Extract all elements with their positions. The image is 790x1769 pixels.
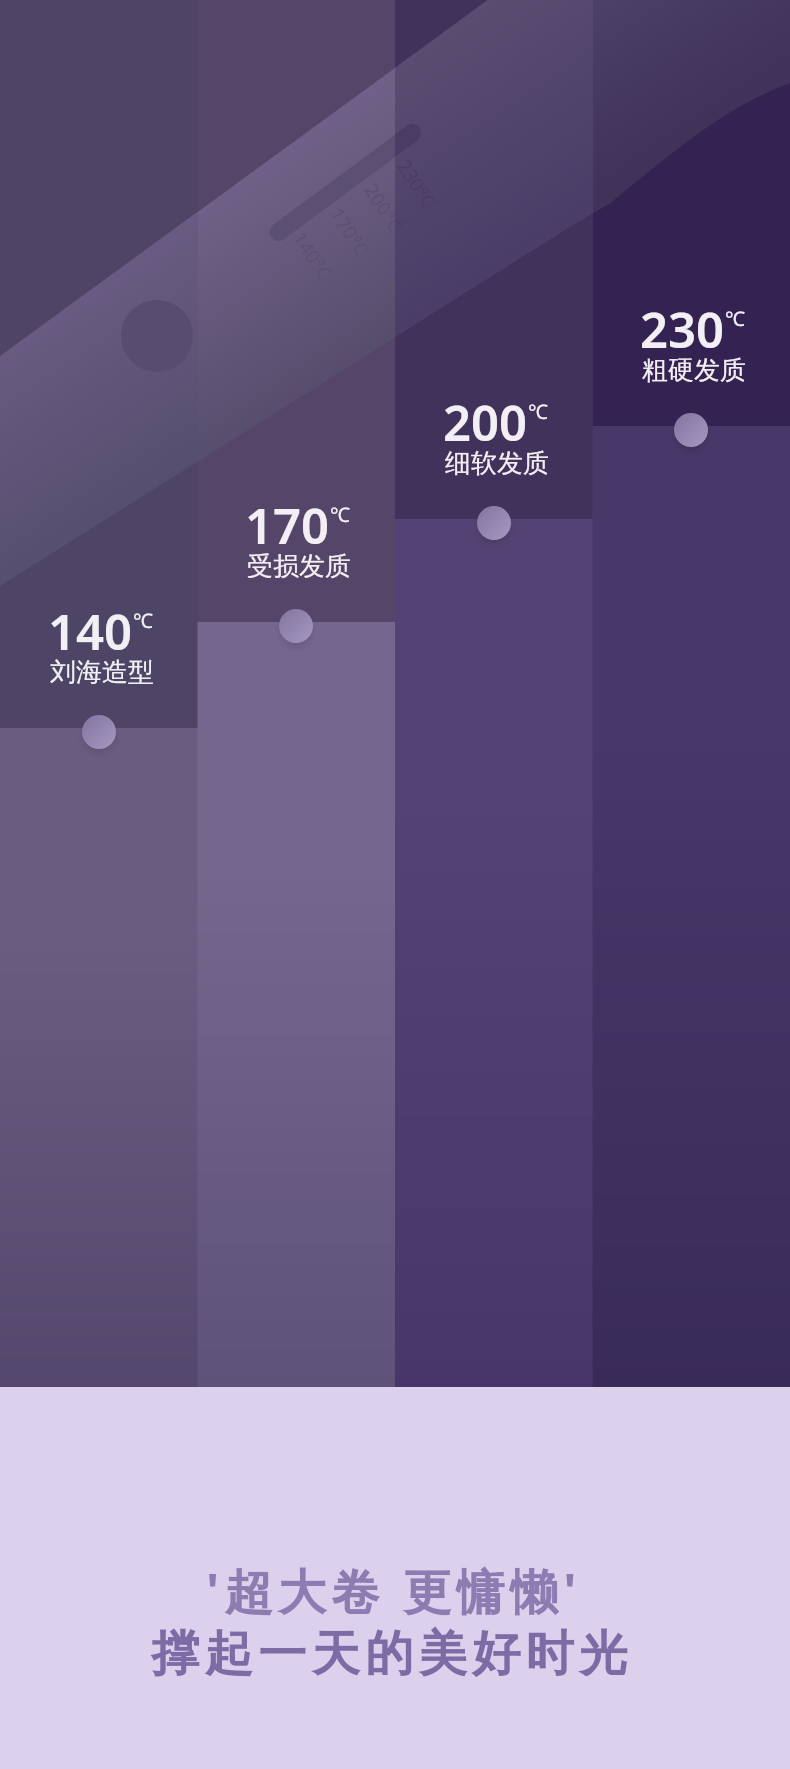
staticText: 140	[48, 598, 133, 654]
staticText: 刘海造型	[2, 656, 202, 689]
button[interactable]: 230 degrees setting	[665, 404, 717, 456]
staticText: '超大卷 更慵懒'	[0, 1558, 789, 1624]
button[interactable]: 200 degrees setting	[468, 497, 520, 549]
button[interactable]: 140	[0, 607, 199, 663]
staticText: 撑起一天的美好时光	[0, 1624, 787, 1684]
button[interactable]: 170 degrees setting	[270, 600, 322, 652]
staticText: ℃	[528, 398, 548, 425]
staticText: 230°C	[392, 155, 396, 213]
button[interactable]: 140 degrees setting	[73, 706, 125, 758]
staticText: 200°C	[358, 179, 396, 237]
button[interactable]: 230	[591, 305, 790, 361]
staticText: 170	[245, 492, 330, 548]
button[interactable]: 170	[196, 501, 396, 557]
staticText: 230	[640, 296, 725, 352]
staticText: ℃	[725, 305, 745, 332]
button[interactable]: 200	[394, 398, 594, 454]
staticText: ℃	[330, 501, 350, 528]
staticText: 细软发质	[397, 447, 597, 480]
staticText: 粗硬发质	[594, 354, 790, 387]
staticText: ℃	[133, 607, 153, 634]
staticText: 200	[443, 389, 528, 445]
staticText: 受损发质	[199, 550, 399, 583]
